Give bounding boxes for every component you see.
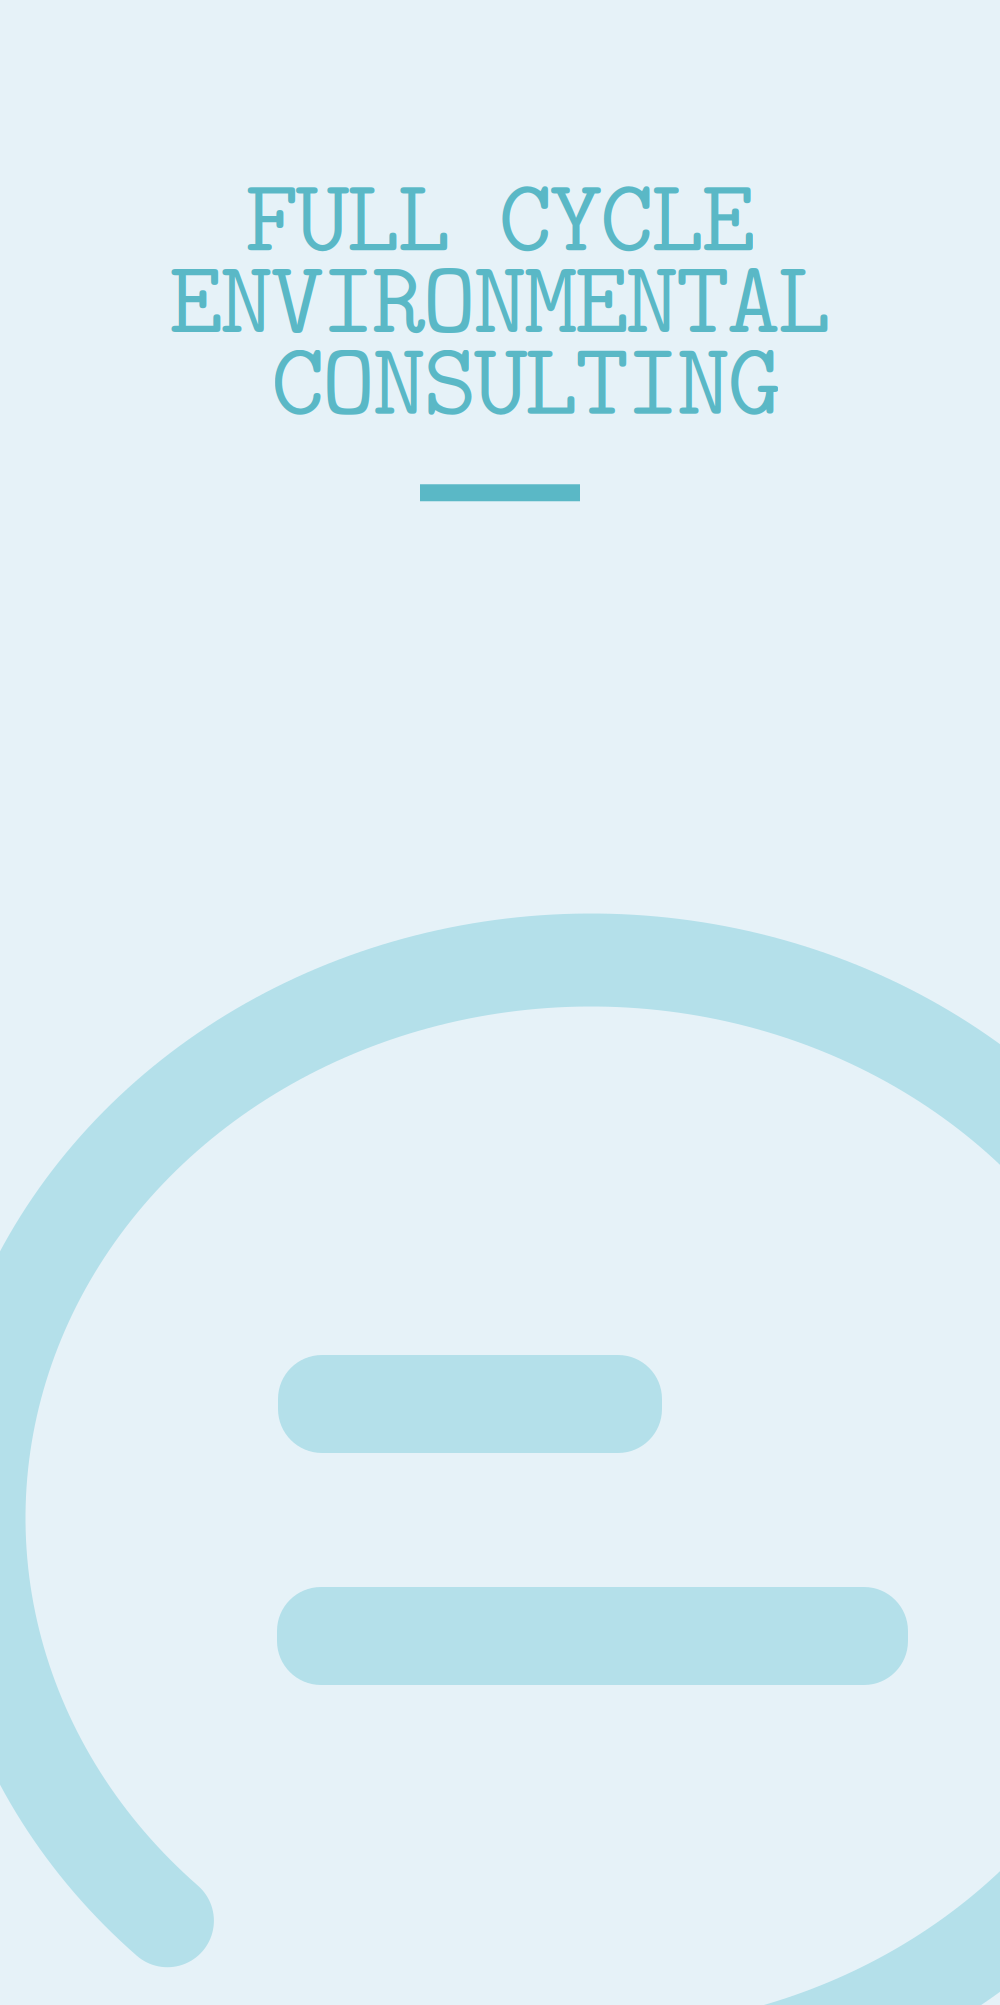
staticText: CONSULTING xyxy=(271,309,781,446)
staticText: ENVIRONMENTAL xyxy=(169,228,831,365)
staticText: FULL CYCLE xyxy=(245,146,755,283)
